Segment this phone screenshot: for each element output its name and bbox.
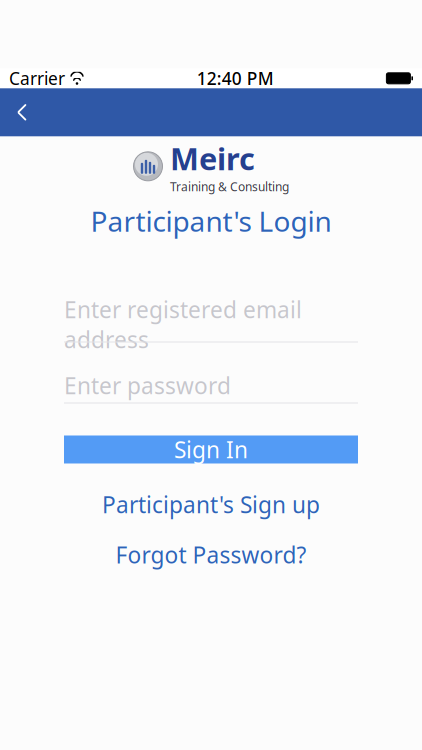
staticText: Training & Consulting [170,179,289,195]
button[interactable]: Participant's Sign up [88,483,334,526]
staticText: Participant's Sign up [102,489,320,520]
button[interactable]: Sign In [64,435,358,463]
button[interactable]: Back [0,88,44,136]
staticText: Forgot Password? [115,540,306,570]
staticText: Meirc [170,138,255,179]
button[interactable]: Forgot Password? [101,534,320,576]
staticText: Carrier [9,67,65,90]
staticText: Enter password [64,370,231,400]
staticText: Sign In [174,434,248,464]
staticText: Enter registered email address [64,294,302,355]
staticText: Participant's Login [90,202,331,239]
staticText: 12:40 PM [197,67,274,90]
